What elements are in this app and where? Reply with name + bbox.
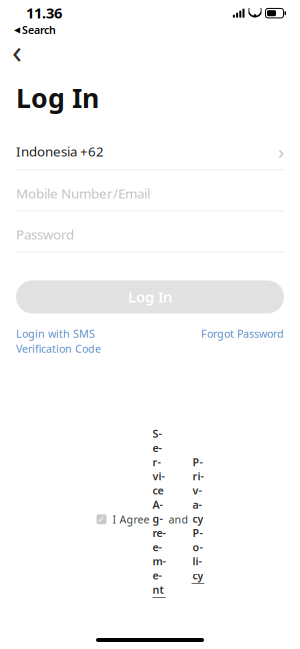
staticText: and — [166, 512, 192, 526]
staticText: Verification Code — [16, 342, 101, 356]
staticText: ‹ — [12, 30, 22, 72]
staticText: Password — [16, 226, 74, 243]
staticText: ✓ — [98, 514, 106, 525]
button[interactable]: Mobile Number/Email — [0, 176, 300, 211]
staticText: › — [278, 138, 284, 165]
button[interactable]: Forgot Password — [201, 326, 284, 341]
button[interactable]: I Agree — [97, 514, 107, 525]
button[interactable]: Login with SMS — [16, 326, 101, 356]
staticText: Log In — [128, 287, 172, 307]
staticText: Privacy Policy — [192, 455, 203, 582]
staticText: Search — [22, 23, 56, 37]
button[interactable]: Log In — [16, 280, 284, 313]
staticText: Forgot Password — [201, 326, 284, 341]
button[interactable]: Back — [0, 36, 46, 66]
staticText: Indonesia +62 — [16, 143, 104, 160]
staticText: 11.36 — [26, 3, 62, 23]
staticText: ◀ — [14, 25, 20, 34]
button[interactable]: Password — [0, 217, 300, 252]
button[interactable]: Privacy Policy — [192, 455, 204, 584]
staticText: Login with SMS — [16, 326, 95, 341]
staticText: I Agree — [113, 512, 153, 526]
staticText: Log In — [16, 80, 99, 115]
button[interactable]: Indonesia +62 — [0, 133, 300, 170]
staticText: Mobile Number/Email — [16, 185, 150, 202]
button[interactable]: Service Agreement — [153, 427, 166, 612]
staticText: Service Agreement — [153, 427, 166, 597]
